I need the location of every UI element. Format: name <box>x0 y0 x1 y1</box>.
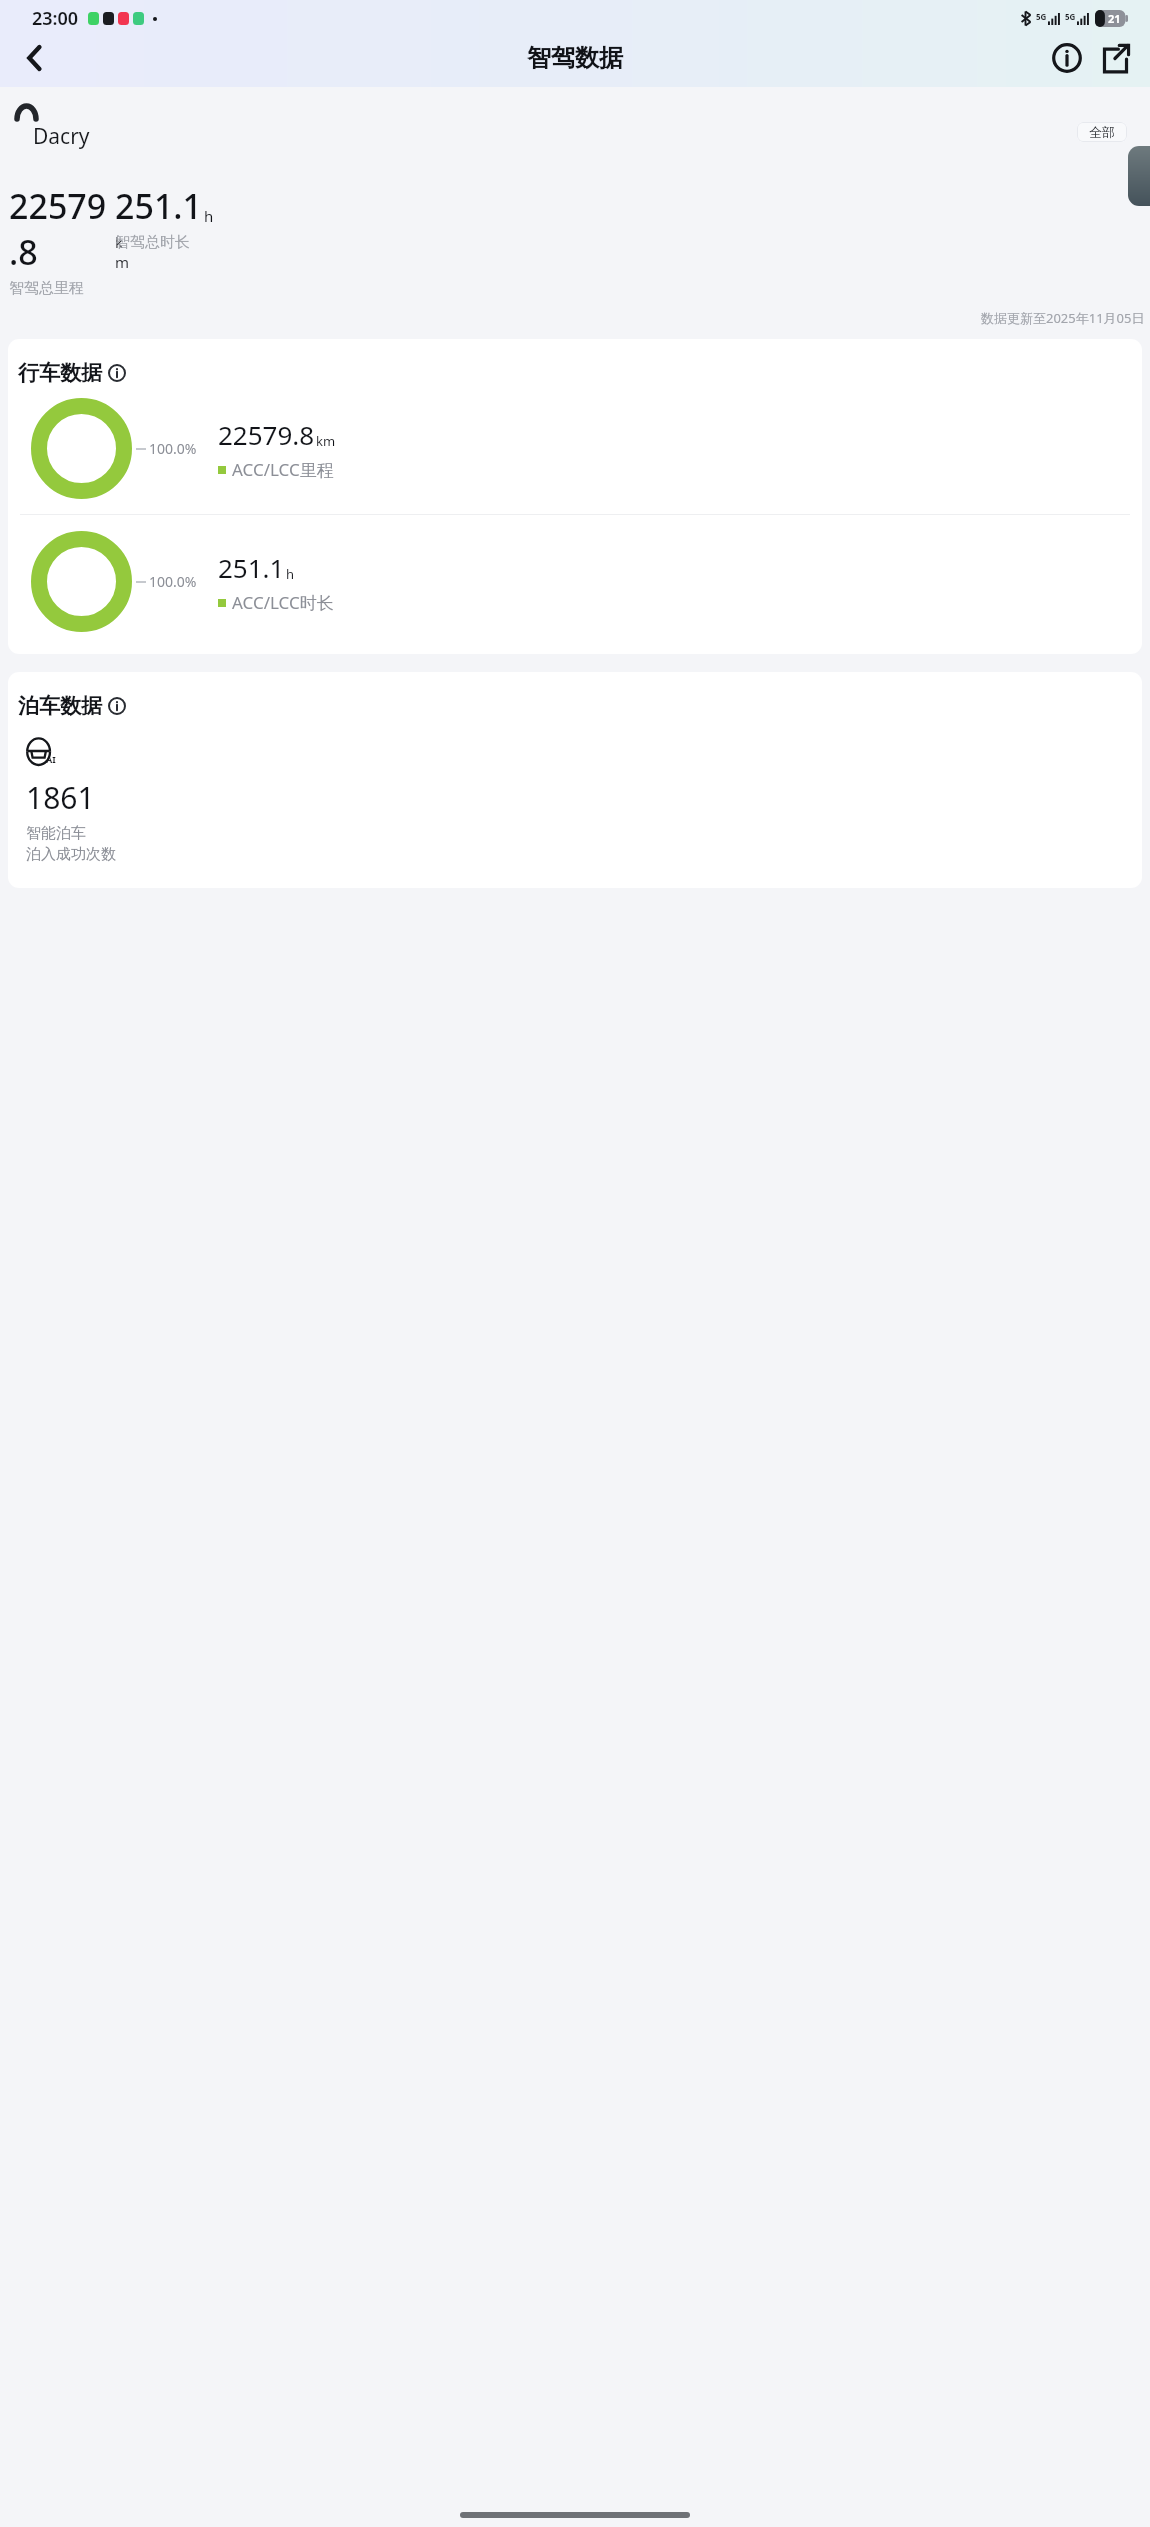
staticText: 21 <box>1108 11 1121 26</box>
staticText: 行车数据 <box>18 360 102 386</box>
button[interactable]: 全部 <box>1077 122 1127 142</box>
staticText: 泊入成功次数 <box>26 845 116 864</box>
staticText: 泊车数据 <box>18 693 102 719</box>
button[interactable]: 泊车数据 <box>8 672 1142 888</box>
staticText: 智驾总时长 <box>115 233 190 252</box>
staticText: km <box>316 432 336 450</box>
staticText: 智能泊车 <box>26 824 86 843</box>
staticText: 智驾总里程 <box>9 279 84 298</box>
staticText: 22579.8 <box>9 183 115 275</box>
staticText: h <box>204 206 214 226</box>
staticText: AI <box>46 753 56 765</box>
button[interactable]: Back <box>8 32 60 84</box>
staticText: 23:00 <box>32 6 79 31</box>
staticText: ACC/LCC时长 <box>232 591 334 614</box>
staticText: 数据更新至2025年11月05日 <box>981 309 1145 327</box>
staticText: 100.0% <box>149 572 197 591</box>
staticText: h <box>286 565 295 583</box>
staticText: 智驾数据 <box>527 43 623 73</box>
staticText: Dacry <box>33 122 90 151</box>
button[interactable]: Info <box>1044 35 1090 81</box>
staticText: 22579.8 <box>218 417 315 452</box>
staticText: 全部 <box>1089 124 1115 140</box>
staticText: 5G <box>1065 11 1076 22</box>
staticText: 100.0% <box>149 439 197 458</box>
button[interactable]: 行车数据 <box>8 339 1142 654</box>
staticText: 1861 <box>26 777 95 818</box>
staticText: ACC/LCC里程 <box>232 458 334 481</box>
staticText: 5G <box>1036 11 1047 22</box>
button[interactable]: Share <box>1092 35 1138 81</box>
staticText: 251.1 <box>218 550 285 585</box>
staticText: 251.1 <box>115 183 203 229</box>
